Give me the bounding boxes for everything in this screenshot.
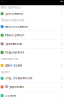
staticText: ▮▮ ▮ bbox=[60, 0, 63, 2]
staticText: Об устройстве bbox=[4, 85, 23, 89]
button[interactable]: Приватность bbox=[0, 40, 64, 48]
staticText: Местоположение bbox=[4, 25, 27, 28]
button[interactable]: Местоположение bbox=[0, 22, 64, 31]
button[interactable]: Об устройстве bbox=[0, 83, 64, 91]
staticText: Дата и время bbox=[4, 64, 22, 67]
staticText: Приложения bbox=[4, 12, 23, 15]
staticText: Другое bbox=[1, 70, 10, 74]
button[interactable]: Приложения bbox=[0, 9, 64, 18]
staticText: Моя страница bbox=[1, 6, 20, 9]
button[interactable]: Уведомления bbox=[0, 48, 64, 57]
staticText: Приватность bbox=[4, 42, 21, 46]
button[interactable]: Язык и регион bbox=[0, 31, 64, 40]
staticText: 9:41 bbox=[1, 0, 4, 2]
button[interactable]: Спец. возможности bbox=[0, 74, 64, 83]
staticText: Спец. возможности bbox=[4, 76, 32, 80]
staticText: Безопасность bbox=[1, 57, 18, 61]
staticText: Справка bbox=[4, 94, 15, 97]
button[interactable]: Дата и время bbox=[0, 61, 64, 70]
staticText: Язык и регион bbox=[4, 33, 24, 37]
staticText: Уведомления bbox=[4, 51, 24, 54]
button[interactable]: Справка bbox=[0, 91, 64, 100]
staticText: Общие настройки bbox=[1, 18, 25, 22]
